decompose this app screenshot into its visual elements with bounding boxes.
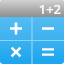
button[interactable]: Multiply bbox=[0, 40, 32, 64]
button[interactable]: Minus bbox=[32, 17, 64, 40]
button[interactable]: Equals bbox=[32, 40, 64, 64]
button[interactable]: Plus bbox=[0, 17, 32, 40]
staticText: 1+2 bbox=[38, 0, 61, 17]
button[interactable]: 1+2 bbox=[0, 0, 64, 17]
